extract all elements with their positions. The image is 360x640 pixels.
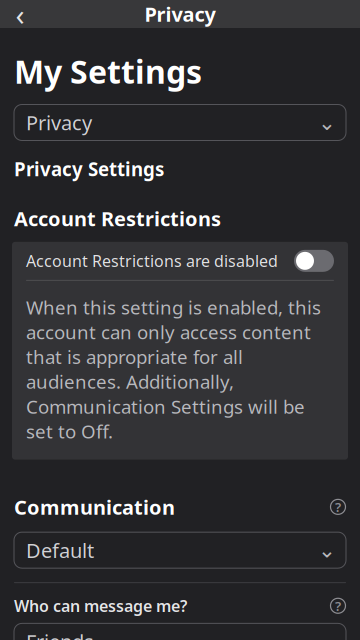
staticText: Account Restrictions xyxy=(14,205,221,232)
staticText: Default xyxy=(26,537,94,563)
staticText: ? xyxy=(335,597,341,615)
button[interactable]: Privacy xyxy=(14,104,346,140)
button[interactable]: Help about Communication xyxy=(330,499,346,515)
staticText: ⌄ xyxy=(318,538,336,562)
staticText: ‹ xyxy=(15,0,24,33)
staticText: ⌄ xyxy=(318,110,336,135)
staticText: Who can message me? xyxy=(14,595,187,616)
staticText: Privacy Settings xyxy=(14,156,164,181)
staticText: ? xyxy=(335,498,341,516)
staticText: When this setting is enabled, this accou… xyxy=(26,295,321,443)
staticText: Privacy xyxy=(144,1,215,27)
staticText: Privacy xyxy=(26,109,92,136)
button[interactable]: Default xyxy=(14,532,346,568)
staticText: Communication xyxy=(14,494,175,520)
button[interactable]: Account Restrictions are disabled xyxy=(12,242,348,280)
staticText: Friends xyxy=(26,628,94,640)
button[interactable]: Back xyxy=(0,0,40,28)
staticText: My Settings xyxy=(14,50,202,92)
button[interactable]: Help about Who can message me? xyxy=(330,598,346,614)
staticText: Account Restrictions are disabled xyxy=(26,250,278,271)
button[interactable]: Friends xyxy=(14,623,346,640)
